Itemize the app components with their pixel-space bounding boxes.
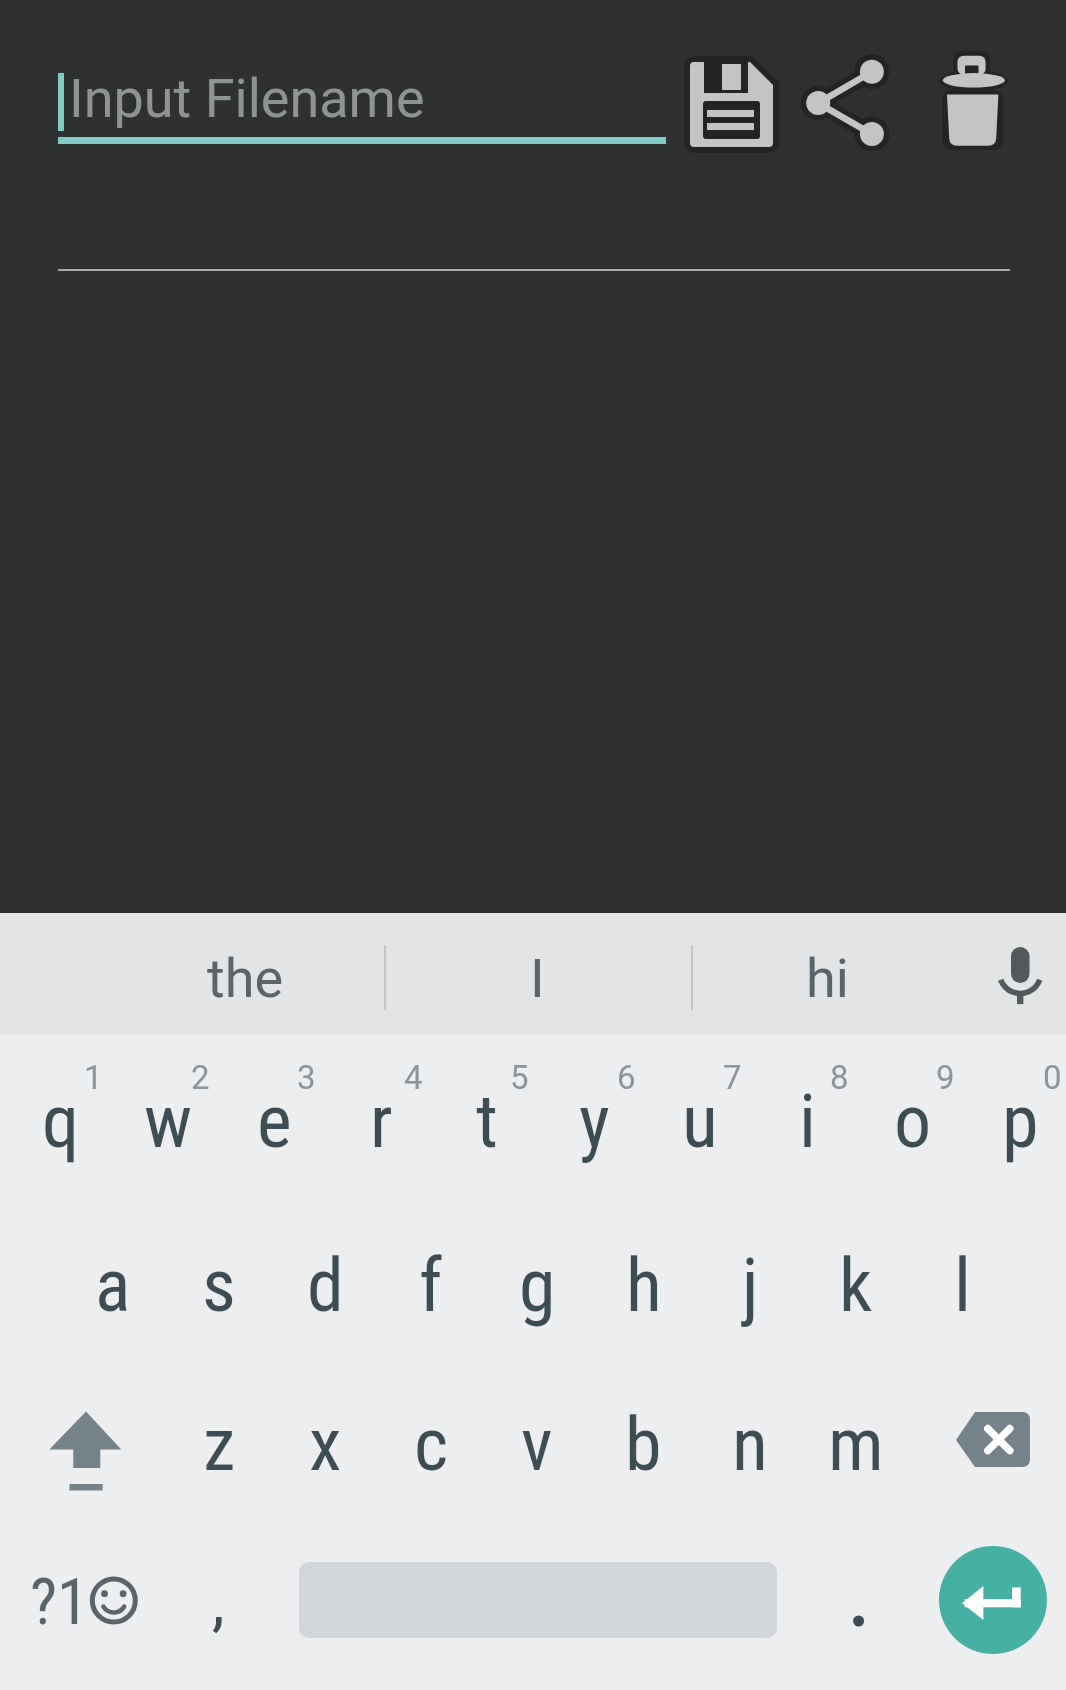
staticText: i (799, 1078, 816, 1165)
button[interactable] (684, 56, 779, 153)
staticText: ?1 (30, 1565, 89, 1640)
staticText: t (476, 1078, 498, 1165)
button[interactable]: v (484, 1363, 590, 1526)
button[interactable] (939, 1546, 1047, 1654)
staticText: I (530, 947, 545, 1010)
staticText: r (370, 1078, 393, 1165)
staticText: x (309, 1401, 342, 1488)
staticText: c (414, 1401, 449, 1488)
staticText: o (894, 1078, 932, 1165)
staticText: z (203, 1401, 236, 1488)
button[interactable]: hi (702, 920, 952, 1036)
staticText: 4 (404, 1058, 423, 1097)
staticText: f (419, 1242, 443, 1329)
staticText: h (626, 1242, 662, 1329)
staticText: e (257, 1078, 292, 1165)
staticText: 5 (510, 1058, 529, 1097)
staticText: q (42, 1078, 80, 1165)
staticText: u (682, 1078, 718, 1165)
button[interactable]: b (590, 1363, 696, 1526)
staticText: the (207, 947, 284, 1010)
button[interactable]: k (803, 1203, 909, 1367)
button[interactable]: q (8, 1039, 114, 1203)
staticText: 2 (191, 1058, 210, 1097)
staticText: 1 (84, 1058, 103, 1097)
button[interactable]: w (115, 1039, 221, 1203)
staticText: 6 (617, 1058, 636, 1097)
button[interactable]: z (166, 1363, 272, 1526)
staticText: hi (806, 947, 849, 1010)
staticText: d (307, 1242, 344, 1329)
button[interactable]: a (60, 1203, 166, 1367)
button[interactable]: Input Filename (58, 52, 666, 150)
button[interactable] (21, 1363, 151, 1526)
staticText: l (954, 1242, 971, 1329)
button[interactable] (795, 50, 905, 160)
button[interactable]: o (860, 1039, 966, 1203)
button[interactable] (975, 925, 1066, 1025)
button[interactable]: r (328, 1039, 434, 1203)
button[interactable]: t (434, 1039, 540, 1203)
button[interactable]: f (378, 1203, 484, 1367)
staticText: j (742, 1242, 759, 1329)
staticText: 8 (830, 1058, 849, 1097)
button[interactable]: c (378, 1363, 484, 1526)
button[interactable]: d (272, 1203, 378, 1367)
staticText: , (212, 1565, 225, 1640)
button[interactable] (933, 46, 1013, 158)
button[interactable]: e (221, 1039, 327, 1203)
staticText: p (1002, 1078, 1039, 1165)
staticText: 3 (297, 1058, 316, 1097)
button[interactable]: u (647, 1039, 753, 1203)
staticText: v (521, 1401, 553, 1488)
staticText: Input Filename (69, 67, 425, 130)
staticText: n (732, 1401, 768, 1488)
button[interactable]: j (697, 1203, 803, 1367)
button[interactable]: ?1 (10, 1527, 160, 1690)
staticText: 7 (723, 1058, 742, 1097)
staticText: y (579, 1078, 610, 1165)
button[interactable]: the (110, 920, 380, 1036)
button[interactable]: I (392, 920, 682, 1036)
button[interactable] (828, 1560, 890, 1640)
staticText: g (519, 1242, 556, 1329)
button[interactable]: n (697, 1363, 803, 1526)
staticText: 9 (936, 1058, 955, 1097)
button[interactable]: l (909, 1203, 1015, 1367)
staticText: k (839, 1242, 873, 1329)
button[interactable]: p (967, 1039, 1066, 1203)
staticText: b (625, 1401, 662, 1488)
button[interactable]: , (165, 1521, 271, 1684)
button[interactable]: s (166, 1203, 272, 1367)
button[interactable]: g (484, 1203, 590, 1367)
button[interactable]: x (272, 1363, 378, 1526)
button[interactable]: i (754, 1039, 860, 1203)
staticText: s (202, 1242, 236, 1329)
staticText: w (144, 1078, 193, 1165)
button[interactable]: y (541, 1039, 647, 1203)
button[interactable]: h (591, 1203, 697, 1367)
staticText: a (95, 1242, 131, 1329)
staticText: m (828, 1401, 884, 1488)
staticText: 0 (1043, 1058, 1062, 1097)
button[interactable]: m (803, 1363, 909, 1526)
button[interactable] (935, 1395, 1050, 1490)
